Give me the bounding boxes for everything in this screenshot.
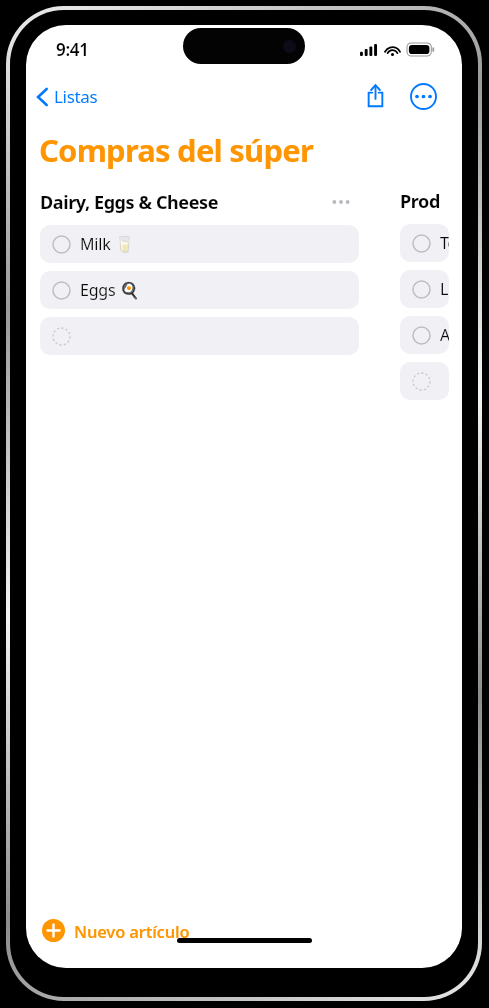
staticText: Nuevo artículo: [74, 920, 190, 942]
button[interactable]: Share: [358, 79, 392, 113]
button[interactable]: Tomatoes 🍅: [400, 224, 449, 262]
staticText: 9:41: [56, 38, 89, 61]
button[interactable]: Apples 🍎: [400, 316, 449, 354]
button[interactable]: Milk 🥛: [40, 225, 359, 263]
button[interactable]: Eggs 🍳: [40, 271, 359, 309]
button[interactable]: Section options: [328, 189, 354, 215]
button[interactable]: Listas: [32, 81, 102, 112]
staticText: Produce: [400, 189, 444, 214]
staticText: Lettuce 🥬: [440, 278, 449, 300]
button[interactable]: Lettuce 🥬: [400, 270, 449, 308]
button[interactable]: Nuevo artículo: [38, 913, 194, 948]
button[interactable]: [400, 362, 449, 400]
button[interactable]: More options: [406, 79, 440, 113]
staticText: Milk 🥛: [80, 233, 135, 255]
staticText: Listas: [54, 85, 98, 108]
staticText: Compras del súper: [39, 129, 313, 171]
staticText: Tomatoes 🍅: [440, 232, 449, 254]
staticText: Eggs 🍳: [80, 279, 140, 301]
staticText: Dairy, Eggs & Cheese: [40, 190, 219, 215]
staticText: Apples 🍎: [440, 324, 449, 346]
